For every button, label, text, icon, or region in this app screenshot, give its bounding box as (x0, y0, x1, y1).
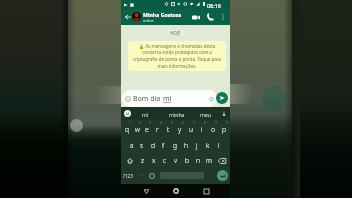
button[interactable]: m (203, 153, 214, 168)
staticText: p (222, 125, 226, 134)
button[interactable]: b (181, 153, 192, 168)
staticText: m (206, 156, 212, 165)
button[interactable]: Voice call (205, 9, 215, 25)
button[interactable]: 6 (174, 120, 185, 137)
staticText: x (152, 156, 156, 165)
button[interactable]: Back (123, 9, 133, 25)
staticText: h (184, 141, 188, 150)
button[interactable]: Bom dia (125, 90, 215, 107)
button[interactable]: l (213, 137, 224, 153)
staticText: mi (163, 94, 172, 104)
staticText: e (145, 125, 149, 134)
button[interactable]: Profile photo (132, 12, 141, 21)
button[interactable]: 9 (207, 120, 218, 137)
staticText: g (173, 141, 177, 150)
staticText: n (196, 156, 200, 165)
button[interactable]: f (158, 137, 169, 153)
button[interactable]: 8 (196, 120, 207, 137)
button[interactable]: mi (142, 111, 149, 118)
button[interactable]: x (148, 153, 159, 168)
button[interactable]: 2 (132, 120, 142, 137)
button[interactable]: Back (140, 184, 153, 198)
staticText: HOJE (170, 30, 181, 36)
staticText: Minha Gostosa (143, 11, 182, 18)
staticText: online (143, 18, 154, 23)
button[interactable]: 7 (185, 120, 196, 137)
button[interactable]: 0 (218, 120, 229, 137)
staticText: 3 (149, 121, 151, 125)
button[interactable]: Send (216, 92, 228, 104)
button[interactable]: minha (169, 111, 185, 118)
button[interactable]: g (169, 137, 180, 153)
button[interactable]: 1 (122, 120, 132, 137)
staticText: o (211, 125, 215, 134)
button[interactable]: h (180, 137, 191, 153)
button[interactable]: z (137, 153, 148, 168)
button[interactable]: s (137, 137, 147, 153)
staticText: 6 (182, 121, 184, 125)
button[interactable]: a (127, 137, 137, 153)
button[interactable]: 5 (163, 120, 174, 137)
button[interactable]: 3 (142, 120, 152, 137)
staticText: 1 (129, 121, 131, 125)
button[interactable]: ?123 (123, 173, 133, 179)
button[interactable]: c (159, 153, 170, 168)
staticText: z (141, 156, 145, 165)
button[interactable]: Enter (217, 170, 228, 181)
staticText: 🔒 As mensagens e chamadas desta conversa… (131, 43, 223, 69)
staticText: Bom dia (133, 94, 163, 104)
button[interactable]: k (202, 137, 213, 153)
staticText: d (151, 141, 155, 150)
button[interactable]: Video call (191, 9, 201, 25)
button[interactable]: v (170, 153, 181, 168)
button[interactable]: Backspace (214, 153, 229, 168)
button[interactable]: HOJE (170, 30, 181, 36)
staticText: f (162, 141, 165, 150)
staticText: a (130, 141, 134, 150)
staticText: 5 (171, 121, 173, 125)
staticText: mi (142, 111, 149, 118)
staticText: 2 (139, 121, 141, 125)
staticText: 4 (160, 121, 162, 125)
staticText: 0 (226, 121, 228, 125)
staticText: 08:16 (207, 2, 221, 9)
staticText: l (218, 141, 220, 150)
button[interactable]: Recents (200, 184, 213, 198)
staticText: k (206, 141, 210, 150)
staticText: r (156, 125, 159, 134)
staticText: ?123 (123, 173, 133, 179)
button[interactable]: n (192, 153, 203, 168)
button[interactable]: More options (218, 9, 227, 25)
button[interactable]: meu (200, 111, 211, 118)
staticText: v (174, 156, 178, 165)
button[interactable]: Expand suggestions (221, 111, 227, 117)
staticText: c (163, 156, 167, 165)
staticText: minha (169, 111, 185, 118)
staticText: meu (200, 111, 211, 118)
staticText: s (140, 141, 144, 150)
staticText: w (135, 125, 140, 134)
staticText: , (141, 171, 143, 176)
staticText: i (201, 125, 203, 134)
button[interactable]: j (191, 137, 202, 153)
button[interactable]: Shift (122, 153, 137, 168)
button[interactable]: Emoji keyboard (148, 172, 155, 179)
button[interactable]: , (139, 171, 144, 176)
staticText: b (185, 156, 189, 165)
staticText: j (196, 141, 198, 150)
staticText: 8 (204, 121, 206, 125)
button[interactable]: Emoji (124, 110, 131, 117)
button[interactable]: d (147, 137, 158, 153)
staticText: 7 (193, 121, 195, 125)
staticText: y (178, 125, 182, 134)
staticText: q (125, 125, 129, 134)
staticText: 9 (215, 121, 217, 125)
button[interactable]: Home (169, 184, 182, 198)
button[interactable]: 🔒 As mensagens e chamadas desta conversa… (128, 41, 226, 71)
staticText: u (189, 125, 193, 134)
staticText: t (167, 125, 170, 134)
button[interactable]: 4 (152, 120, 163, 137)
